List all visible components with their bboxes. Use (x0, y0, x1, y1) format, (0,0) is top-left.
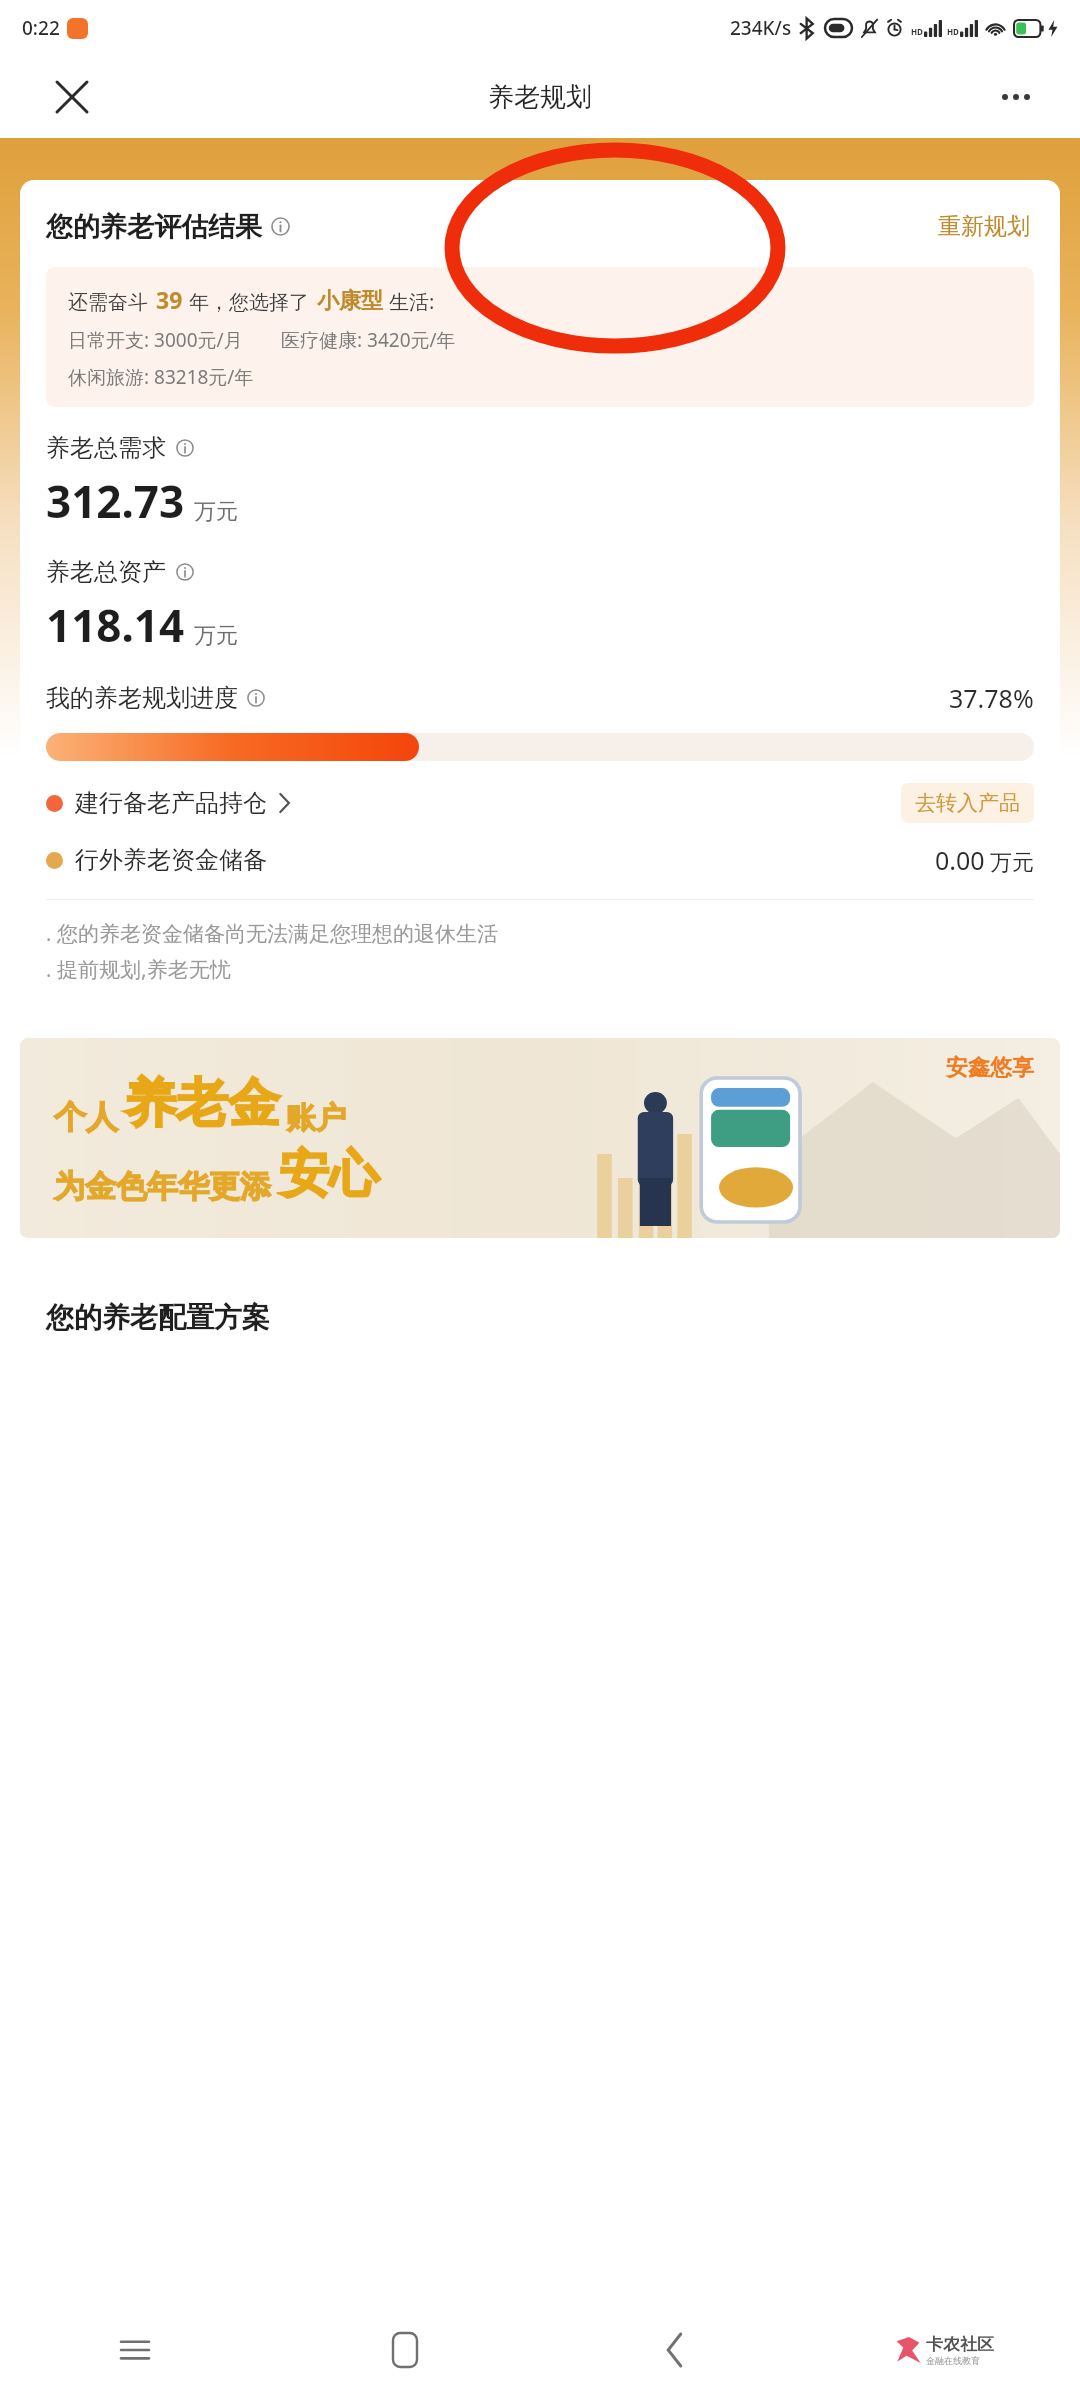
staticText: 金融在线教育 (926, 2355, 980, 2366)
staticText: 您的养老评估结果 (46, 210, 262, 244)
button[interactable]: Home (270, 2300, 540, 2400)
staticText: 39 (156, 284, 183, 315)
button[interactable]: 重新规划 (934, 208, 1034, 245)
button[interactable]: Back (540, 2300, 810, 2400)
staticText: 医疗健康: 3420元/年 (281, 327, 456, 353)
staticText: 账户 (286, 1099, 346, 1137)
button[interactable]: 去转入产品 (901, 783, 1034, 823)
staticText: 37.78% (949, 681, 1034, 715)
button[interactable]: Recent apps (0, 2300, 270, 2400)
staticText: 还需奋斗 (68, 290, 148, 315)
staticText: HD (911, 26, 923, 37)
staticText: 养老总需求 (46, 433, 166, 463)
staticText: 您的养老配置方案 (46, 1300, 270, 1335)
staticText: 个人 (54, 1097, 118, 1137)
staticText: 312.73 (46, 471, 185, 531)
button[interactable]: 建行备老产品持仓 (46, 783, 1034, 823)
staticText: 养老规划 (488, 81, 592, 114)
staticText: 234K/s (730, 15, 792, 41)
staticText: 万元 (194, 498, 238, 526)
staticText: 安鑫悠享 (946, 1054, 1034, 1082)
staticText: 万元 (990, 849, 1034, 877)
staticText: 万元 (194, 622, 238, 650)
staticText: 行外养老资金储备 (75, 845, 267, 875)
staticText: 休闲旅游: 83218元/年 (68, 364, 254, 390)
staticText: 卡农社区 (926, 2334, 994, 2355)
staticText: 0.00 (935, 843, 985, 877)
staticText: 提前规划,养老无忧 (57, 955, 231, 984)
staticText: 安心 (279, 1143, 379, 1206)
staticText: . (46, 920, 52, 947)
button[interactable]: Close (44, 69, 100, 125)
staticText: 日常开支: 3000元/月 (68, 327, 243, 353)
button[interactable]: 个人 (20, 1038, 1060, 1238)
staticText: 养老总资产 (46, 557, 166, 587)
staticText: 您的养老资金储备尚无法满足您理想的退休生活 (57, 921, 498, 947)
staticText: 建行备老产品持仓 (75, 788, 267, 818)
staticText: 生活: (389, 288, 435, 315)
staticText: 养老金 (124, 1071, 280, 1137)
staticText: . (46, 956, 52, 983)
staticText: 我的养老规划进度 (46, 683, 238, 713)
staticText: 为金色年华更添 (54, 1167, 271, 1206)
staticText: HD (947, 26, 959, 37)
button[interactable]: More options (988, 69, 1044, 125)
staticText: 118.14 (46, 595, 185, 655)
staticText: 年，您选择了 (189, 290, 309, 315)
staticText: 去转入产品 (915, 790, 1020, 816)
staticText: 0:22 (22, 15, 60, 41)
staticText: 重新规划 (938, 212, 1030, 241)
staticText: 小康型 (317, 287, 383, 315)
